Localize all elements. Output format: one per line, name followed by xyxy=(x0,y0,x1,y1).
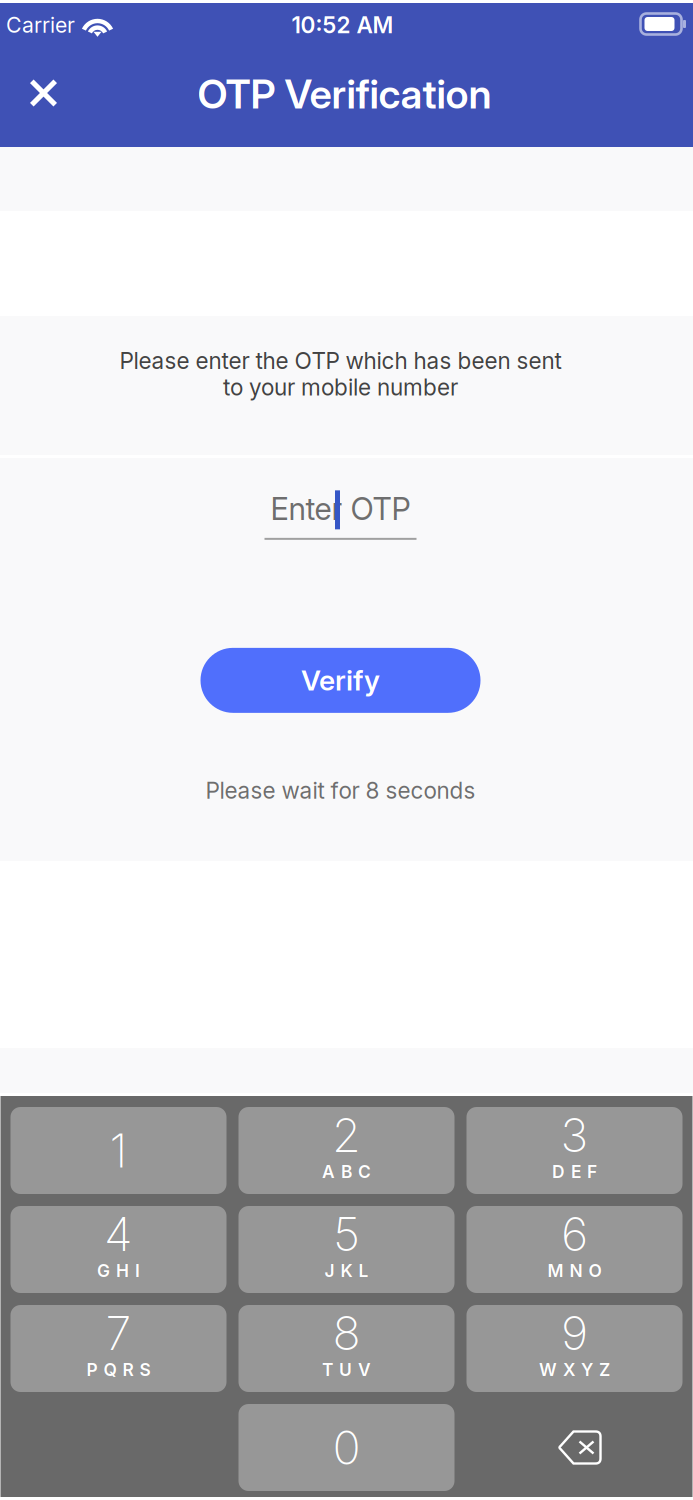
button[interactable]: 7 xyxy=(10,1305,226,1392)
staticText: M N O xyxy=(547,1260,601,1281)
staticText: 2 xyxy=(332,1107,361,1163)
staticText: 4 xyxy=(104,1206,133,1262)
button[interactable]: Verify xyxy=(200,648,480,713)
button[interactable]: 5 xyxy=(238,1206,454,1293)
staticText: Please wait for 8 seconds xyxy=(205,777,475,804)
button[interactable]: 1 xyxy=(10,1107,226,1194)
button[interactable]: 6 xyxy=(466,1206,682,1293)
staticText: 7 xyxy=(105,1305,131,1361)
staticText: 0 xyxy=(332,1419,360,1476)
staticText: G H I xyxy=(97,1260,140,1281)
staticText: to your mobile number xyxy=(223,373,458,401)
staticText: Verify xyxy=(301,663,380,697)
staticText: W X Y Z xyxy=(539,1359,610,1380)
staticText: Please enter the OTP which has been sent xyxy=(119,347,561,374)
staticText: 10:52 AM xyxy=(291,11,393,39)
staticText: 8 xyxy=(332,1305,360,1361)
staticText: Carrier xyxy=(6,12,75,38)
staticText: J K L xyxy=(324,1260,368,1281)
staticText: D E F xyxy=(552,1161,597,1182)
staticText: 1 xyxy=(109,1122,127,1179)
button[interactable]: 2 xyxy=(238,1107,454,1194)
button[interactable]: 8 xyxy=(238,1305,454,1392)
button[interactable]: 9 xyxy=(466,1305,682,1392)
staticText: 6 xyxy=(561,1206,588,1262)
staticText: OTP Verification xyxy=(197,70,491,118)
staticText: T U V xyxy=(322,1359,371,1380)
staticText: Enter OTP xyxy=(270,490,410,527)
staticText: 5 xyxy=(333,1206,360,1262)
button[interactable]: Delete xyxy=(466,1404,682,1491)
staticText: A B C xyxy=(322,1161,371,1182)
staticText: 9 xyxy=(561,1305,588,1361)
staticText: 3 xyxy=(560,1107,588,1163)
staticText: P Q R S xyxy=(86,1359,150,1380)
button[interactable]: 3 xyxy=(466,1107,682,1194)
button[interactable]: 0 xyxy=(238,1404,454,1491)
button[interactable]: 4 xyxy=(10,1206,226,1293)
button[interactable]: Close xyxy=(14,63,73,122)
